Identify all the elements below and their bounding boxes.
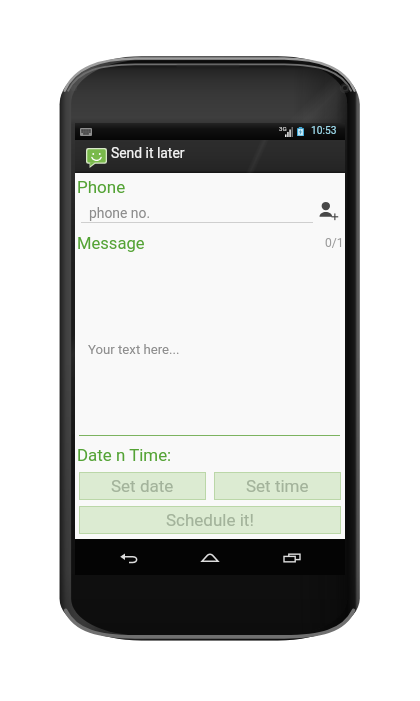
staticText: Phone xyxy=(77,177,126,197)
staticText: Message xyxy=(77,234,145,253)
button[interactable]: Back xyxy=(101,540,157,575)
staticText: Schedule it! xyxy=(166,510,254,530)
button[interactable]: Add contact xyxy=(317,200,338,221)
staticText: Set time xyxy=(246,476,309,496)
staticText: Date n Time: xyxy=(77,445,172,465)
staticText: 10:53 xyxy=(311,125,337,137)
button[interactable]: Recent apps xyxy=(264,540,320,575)
staticText: Set date xyxy=(111,476,174,496)
staticText: 3G xyxy=(279,125,287,132)
staticText: Send it later xyxy=(111,145,185,161)
button[interactable]: Home xyxy=(182,540,238,575)
button[interactable]: Set time xyxy=(214,472,341,500)
staticText: 0/1 xyxy=(325,236,344,250)
button[interactable]: Schedule it! xyxy=(79,506,341,534)
button[interactable]: Set date xyxy=(79,472,206,500)
staticText: Your text here... xyxy=(88,342,180,357)
staticText: phone no. xyxy=(89,205,151,221)
